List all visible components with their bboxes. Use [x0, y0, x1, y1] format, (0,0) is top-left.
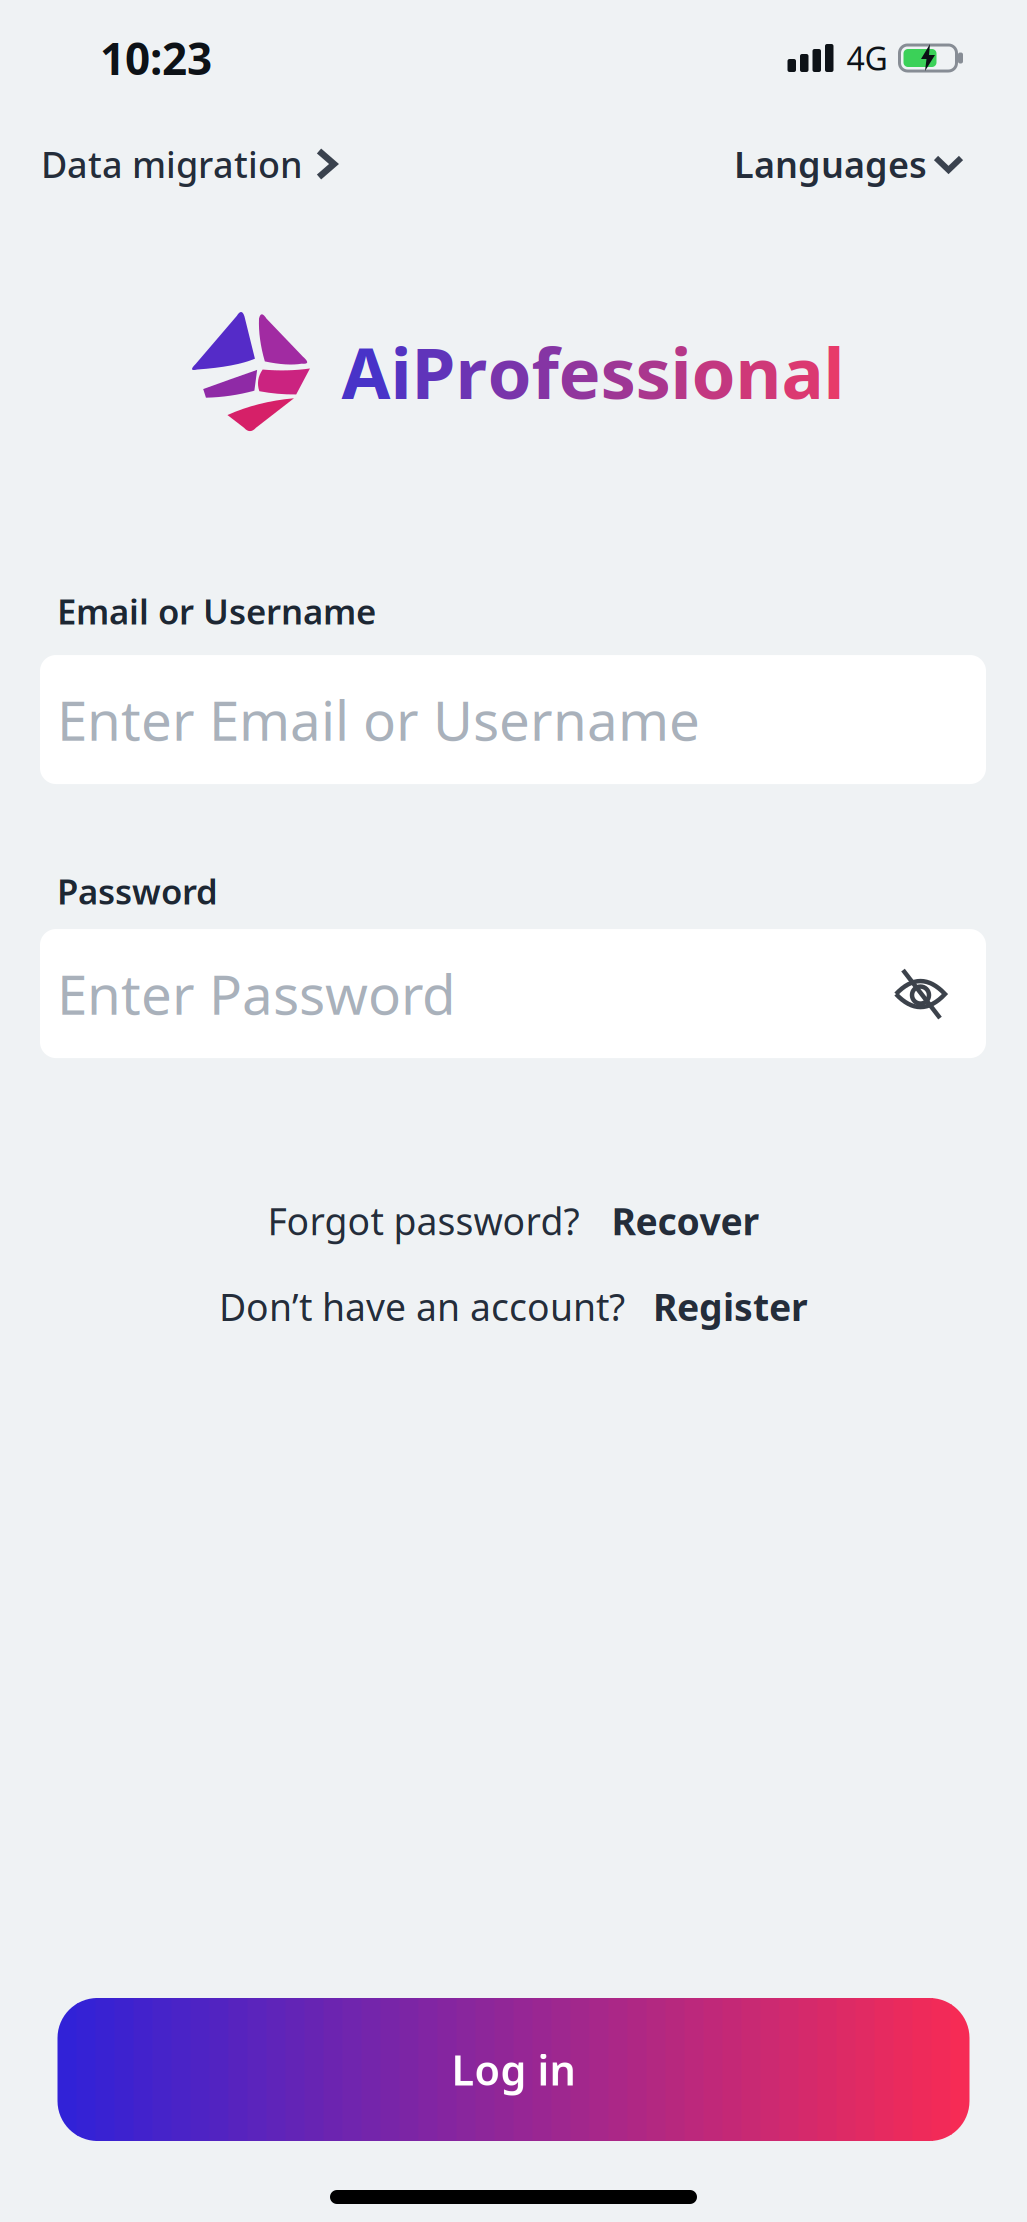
staticText: Log in [451, 2042, 575, 2097]
staticText: Recover [611, 1196, 759, 1246]
staticText: Enter Email or Username [57, 683, 700, 756]
staticText: 10:23 [100, 29, 212, 87]
staticText: a [781, 325, 823, 418]
button[interactable]: Recover [611, 1196, 759, 1246]
staticText: s [635, 325, 670, 418]
staticText: 4G [846, 37, 887, 79]
staticText: P [411, 325, 455, 418]
staticText: Enter Password [57, 957, 456, 1030]
staticText: A [341, 325, 390, 418]
button[interactable]: Data migration [41, 140, 339, 188]
staticText: i [390, 325, 411, 418]
staticText: o [487, 325, 531, 418]
staticText: Don’t have an account? [219, 1282, 625, 1331]
staticText: n [735, 325, 781, 418]
staticText: o [691, 325, 735, 418]
staticText: Languages [734, 140, 927, 188]
button[interactable]: Languages [734, 140, 964, 188]
staticText: Forgot password? [267, 1196, 579, 1246]
staticText: l [823, 325, 844, 418]
staticText: Email or Username [57, 588, 376, 634]
button[interactable]: Register [653, 1282, 808, 1331]
staticText: f [531, 325, 558, 418]
staticText: Register [653, 1282, 808, 1331]
button[interactable]: Log in [57, 1998, 969, 2141]
staticText: Password [57, 868, 218, 914]
staticText: e [558, 325, 600, 418]
button[interactable]: Show password [894, 967, 947, 1020]
staticText: Data migration [41, 140, 303, 188]
staticText: s [600, 325, 635, 418]
staticText: r [455, 325, 487, 418]
staticText: i [670, 325, 691, 418]
